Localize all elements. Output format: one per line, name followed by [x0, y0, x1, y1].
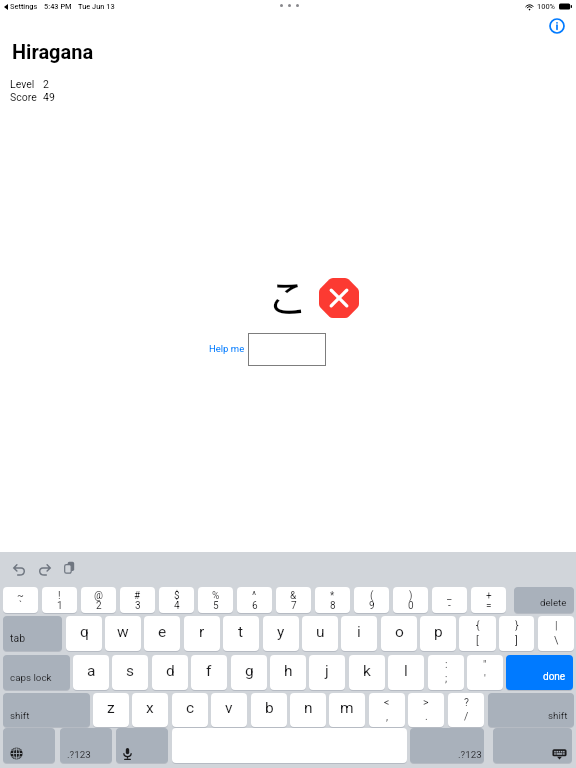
staticText: 9	[369, 600, 375, 612]
button[interactable]: _	[432, 587, 467, 613]
staticText: ]	[515, 634, 518, 646]
staticText: 4	[174, 600, 180, 612]
button[interactable]: delete	[514, 587, 574, 613]
staticText: 2	[43, 78, 49, 90]
staticText: :	[445, 658, 448, 670]
button[interactable]: v	[211, 693, 247, 727]
button[interactable]: caps lock	[3, 655, 70, 690]
button[interactable]: +	[471, 587, 506, 613]
button[interactable]: z	[93, 693, 129, 727]
button[interactable]: done	[506, 655, 573, 690]
staticText: r	[199, 623, 205, 641]
button[interactable]: dismiss	[493, 728, 572, 763]
staticText: =	[486, 600, 492, 612]
staticText: i	[357, 623, 361, 641]
staticText: +	[486, 590, 492, 602]
staticText: o	[395, 623, 404, 641]
button[interactable]: j	[309, 655, 345, 690]
button[interactable]: c	[172, 693, 208, 727]
button[interactable]: %	[198, 587, 233, 613]
button[interactable]: ^	[237, 587, 272, 613]
button[interactable]: #	[120, 587, 155, 613]
staticText: h	[284, 662, 293, 680]
button[interactable]: globe	[3, 728, 55, 763]
button[interactable]: *	[315, 587, 350, 613]
button[interactable]: d	[152, 655, 188, 690]
button[interactable]: .?123	[60, 728, 112, 763]
button[interactable]: @	[81, 587, 116, 613]
button[interactable]: mic	[116, 728, 168, 763]
staticText: )	[409, 590, 413, 602]
button[interactable]: Undo	[13, 563, 26, 576]
button[interactable]: q	[66, 616, 102, 651]
button[interactable]: !	[42, 587, 77, 613]
staticText: m	[340, 699, 354, 717]
staticText: >	[423, 696, 429, 708]
staticText: d	[166, 662, 175, 680]
staticText: l	[404, 662, 408, 680]
button[interactable]: m	[329, 693, 365, 727]
staticText: [	[476, 634, 479, 646]
button[interactable]: .?123	[410, 728, 484, 763]
staticText: shift	[10, 710, 30, 721]
button[interactable]: t	[223, 616, 259, 651]
staticText: c	[186, 699, 195, 717]
staticText: .?123	[67, 749, 91, 760]
button[interactable]: Redo	[38, 563, 51, 576]
button[interactable]: y	[263, 616, 299, 651]
staticText: 7	[291, 600, 297, 612]
button[interactable]: &	[276, 587, 311, 613]
button[interactable]: k	[349, 655, 385, 690]
button[interactable]: <	[369, 693, 405, 727]
staticText: done	[543, 671, 566, 683]
button[interactable]: x	[132, 693, 168, 727]
staticText: shift	[548, 710, 568, 721]
button[interactable]: h	[270, 655, 306, 690]
button[interactable]: |	[538, 616, 574, 651]
button[interactable]: l	[388, 655, 424, 690]
button[interactable]: Help me	[208, 342, 246, 355]
button[interactable]: u	[302, 616, 338, 651]
button[interactable]: i	[341, 616, 377, 651]
button[interactable]: g	[231, 655, 267, 690]
button[interactable]: f	[191, 655, 227, 690]
button[interactable]: a	[73, 655, 109, 690]
button[interactable]: s	[112, 655, 148, 690]
button[interactable]: Paste	[63, 561, 76, 574]
staticText: -	[448, 600, 451, 612]
button[interactable]: Incorrect	[319, 278, 359, 318]
button[interactable]: n	[290, 693, 326, 727]
button[interactable]: e	[144, 616, 180, 651]
staticText: |	[555, 619, 558, 631]
button[interactable]: )	[393, 587, 428, 613]
staticText: 3	[135, 600, 141, 612]
button[interactable]: {	[459, 616, 496, 651]
button[interactable]: ~	[3, 587, 38, 613]
staticText: z	[107, 699, 115, 717]
button[interactable]: (	[354, 587, 389, 613]
button[interactable]: w	[105, 616, 141, 651]
button[interactable]: shift	[488, 693, 574, 727]
button[interactable]: "	[467, 655, 503, 690]
button[interactable]: }	[499, 616, 534, 651]
button[interactable]: Info	[548, 17, 566, 35]
button[interactable]: shift	[3, 693, 90, 727]
button[interactable]: p	[420, 616, 456, 651]
staticText: }	[515, 619, 519, 631]
staticText: 0	[408, 600, 414, 612]
staticText: Help me	[209, 343, 245, 354]
button[interactable]: tab	[3, 616, 62, 651]
staticText: <	[384, 696, 390, 708]
staticText: こ	[266, 276, 306, 319]
button[interactable]: :	[428, 655, 464, 690]
button[interactable]: >	[408, 693, 444, 727]
button[interactable]: $	[159, 587, 194, 613]
button[interactable]: o	[381, 616, 417, 651]
staticText: 5:43 PM	[44, 2, 72, 11]
button[interactable]: b	[251, 693, 287, 727]
button[interactable]	[248, 333, 326, 366]
button[interactable]: ?	[448, 693, 484, 727]
button[interactable]: r	[184, 616, 220, 651]
staticText: #	[134, 590, 141, 602]
